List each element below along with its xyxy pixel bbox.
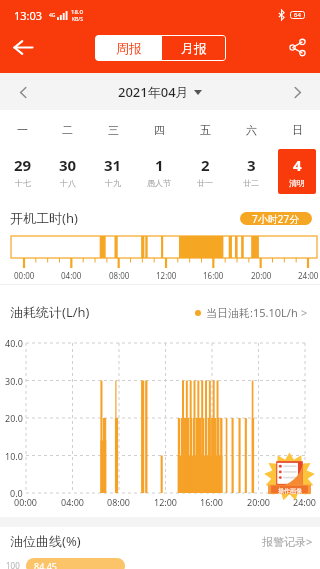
button[interactable]: Share — [280, 30, 314, 64]
staticText: 30 — [59, 155, 77, 175]
staticText: 08:00 — [107, 496, 131, 508]
button[interactable]: 4 — [278, 149, 316, 194]
button[interactable]: 当日油耗:15.10L/h — [193, 303, 310, 322]
staticText: 4G — [49, 12, 56, 19]
staticText: 29 — [14, 155, 32, 175]
staticText: 3 — [247, 155, 256, 175]
staticText: 10.0 — [5, 450, 23, 462]
staticText: 十八 — [60, 178, 76, 188]
staticText: 7小时27分 — [252, 212, 300, 225]
staticText: 18.0 — [71, 8, 83, 16]
staticText: 64 — [294, 11, 301, 19]
staticText: 二 — [62, 123, 73, 137]
staticText: 五 — [200, 123, 211, 137]
staticText: 0.0 — [10, 487, 23, 499]
staticText: 20:00 — [247, 496, 271, 508]
button[interactable]: 1 — [140, 149, 178, 194]
staticText: KB/S — [72, 16, 83, 23]
staticText: 操作画像 — [278, 487, 302, 495]
staticText: 20.0 — [5, 412, 23, 424]
staticText: 廿一 — [197, 178, 213, 188]
staticText: 100 — [6, 560, 20, 569]
button[interactable]: Next month — [282, 77, 312, 107]
staticText: 2 — [201, 155, 210, 175]
staticText: 2021年04月 — [118, 83, 189, 101]
staticText: 十七 — [15, 178, 31, 188]
staticText: 20:00 — [251, 270, 272, 281]
staticText: 00:00 — [14, 496, 38, 508]
staticText: 24:00 — [298, 270, 319, 281]
button[interactable]: 报警记录> — [260, 532, 315, 551]
staticText: 00:00 — [14, 270, 35, 281]
staticText: 四 — [154, 123, 165, 137]
staticText: 12:00 — [154, 496, 178, 508]
staticText: 十九 — [105, 178, 121, 188]
staticText: 40.0 — [5, 337, 23, 349]
staticText: 周报 — [116, 40, 142, 56]
button[interactable]: 31 — [94, 149, 132, 194]
staticText: 13:03 — [14, 8, 43, 23]
staticText: 月报 — [181, 40, 207, 56]
button[interactable]: 30 — [49, 149, 87, 194]
button[interactable]: 2 — [186, 149, 224, 194]
staticText: 04:00 — [61, 270, 82, 281]
staticText: 一 — [17, 123, 28, 137]
staticText: 30.0 — [5, 375, 23, 387]
staticText: 4 — [293, 155, 302, 175]
staticText: 04:00 — [61, 496, 85, 508]
staticText: 当日油耗:15.10L/h — [206, 305, 298, 320]
staticText: 油耗统计(L/h) — [10, 303, 90, 321]
staticText: > — [301, 305, 308, 320]
staticText: 六 — [246, 123, 257, 137]
staticText: 16:00 — [203, 270, 224, 281]
staticText: 日 — [292, 123, 303, 137]
staticText: 三 — [108, 123, 119, 137]
button[interactable]: 29 — [4, 149, 42, 194]
staticText: 愚人节 — [147, 178, 171, 188]
staticText: 08:00 — [109, 270, 130, 281]
button[interactable]: Back — [6, 30, 40, 64]
button[interactable]: 3 — [232, 149, 270, 194]
staticText: 16:00 — [200, 496, 224, 508]
staticText: 84.45 — [34, 560, 58, 569]
staticText: 12:00 — [156, 270, 177, 281]
button[interactable]: 2021年04月 — [114, 79, 206, 105]
staticText: 31 — [104, 155, 122, 175]
staticText: 开机工时(h) — [10, 209, 78, 227]
button[interactable]: 月报 — [162, 36, 225, 60]
staticText: 报警记录> — [262, 534, 313, 549]
button[interactable]: 周报 — [96, 36, 162, 60]
staticText: 1 — [155, 155, 164, 175]
staticText: 廿二 — [243, 178, 259, 188]
staticText: 24:00 — [293, 496, 317, 508]
button[interactable]: Previous month — [8, 77, 38, 107]
staticText: 油位曲线(%) — [10, 532, 81, 550]
staticText: 清明 — [289, 178, 305, 188]
